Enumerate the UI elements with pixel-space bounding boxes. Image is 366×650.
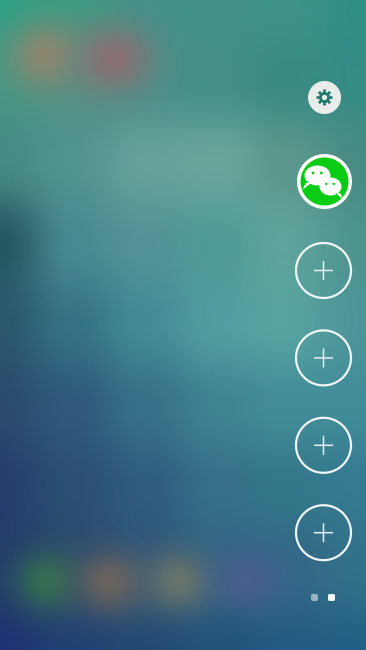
button[interactable]: Add shortcut — [296, 243, 351, 298]
button[interactable]: Add shortcut — [296, 505, 351, 560]
button[interactable]: Add shortcut — [296, 330, 351, 385]
button[interactable]: Settings — [308, 81, 341, 114]
button[interactable]: Add shortcut — [296, 418, 351, 473]
button[interactable]: WeChat — [297, 154, 352, 209]
